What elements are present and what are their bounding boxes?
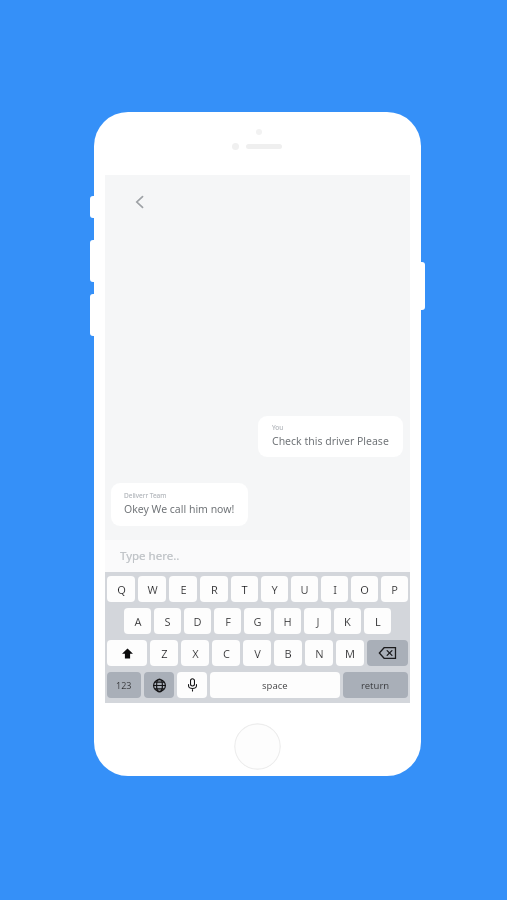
staticText: T — [241, 582, 248, 597]
staticText: J — [316, 614, 320, 629]
staticText: K — [344, 614, 351, 629]
button[interactable]: Backspace — [367, 640, 408, 666]
button[interactable]: V — [243, 640, 271, 666]
button[interactable]: H — [274, 608, 301, 634]
staticText: Z — [161, 646, 168, 661]
button[interactable]: Back — [125, 187, 155, 217]
button[interactable]: K — [334, 608, 361, 634]
staticText: Type here.. — [120, 548, 180, 564]
button[interactable]: U — [291, 576, 318, 602]
button[interactable]: I — [321, 576, 348, 602]
button[interactable]: B — [274, 640, 302, 666]
staticText: Okey We call him now! — [124, 502, 235, 516]
button[interactable]: Y — [261, 576, 288, 602]
button[interactable]: Home — [234, 723, 281, 770]
button[interactable]: A — [124, 608, 151, 634]
staticText: H — [283, 614, 292, 629]
staticText: Y — [271, 582, 278, 597]
staticText: W — [147, 582, 158, 597]
staticText: S — [164, 614, 171, 629]
staticText: Check this driver Please — [272, 434, 389, 448]
button[interactable]: F — [214, 608, 241, 634]
button[interactable]: N — [305, 640, 333, 666]
staticText: G — [253, 614, 262, 629]
staticText: You — [272, 423, 284, 432]
button[interactable]: Q — [107, 576, 135, 602]
staticText: X — [192, 646, 199, 661]
staticText: C — [223, 646, 230, 661]
button[interactable]: J — [304, 608, 331, 634]
button[interactable]: S — [154, 608, 181, 634]
staticText: N — [315, 646, 324, 661]
button[interactable]: Deliverr Team — [111, 483, 248, 526]
button[interactable]: P — [381, 576, 408, 602]
staticText: return — [361, 679, 390, 692]
button[interactable]: space — [210, 672, 340, 698]
staticText: Deliverr Team — [124, 491, 167, 500]
button[interactable]: Shift — [107, 640, 147, 666]
button[interactable]: M — [336, 640, 364, 666]
staticText: E — [180, 582, 187, 597]
button[interactable]: C — [212, 640, 240, 666]
staticText: M — [345, 646, 355, 661]
button[interactable]: G — [244, 608, 271, 634]
staticText: O — [360, 582, 369, 597]
staticText: R — [211, 582, 218, 597]
staticText: P — [391, 582, 398, 597]
staticText: D — [193, 614, 202, 629]
staticText: space — [262, 679, 288, 692]
staticText: A — [134, 614, 142, 629]
button[interactable]: Dictate — [177, 672, 207, 698]
staticText: I — [333, 582, 337, 597]
staticText: 123 — [116, 679, 132, 691]
button[interactable]: D — [184, 608, 211, 634]
staticText: L — [375, 614, 381, 629]
button[interactable]: L — [364, 608, 391, 634]
staticText: B — [284, 646, 292, 661]
staticText: F — [225, 614, 231, 629]
staticText: V — [254, 646, 261, 661]
button[interactable]: O — [351, 576, 378, 602]
button[interactable]: You — [258, 416, 403, 457]
button[interactable]: E — [169, 576, 197, 602]
button[interactable]: 123 — [107, 672, 141, 698]
button[interactable]: X — [181, 640, 209, 666]
button[interactable]: Type here.. — [105, 540, 410, 572]
staticText: U — [300, 582, 309, 597]
button[interactable]: R — [200, 576, 228, 602]
button[interactable]: return — [343, 672, 408, 698]
button[interactable]: T — [231, 576, 258, 602]
button[interactable]: W — [138, 576, 166, 602]
button[interactable]: Change keyboard language — [144, 672, 174, 698]
button[interactable]: Z — [150, 640, 178, 666]
staticText: Q — [117, 582, 126, 597]
